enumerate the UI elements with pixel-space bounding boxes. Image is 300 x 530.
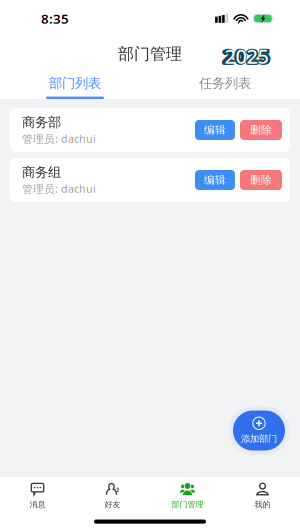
staticText: 我的 [254,500,270,509]
staticText: 删除 [250,123,272,136]
staticText: 商务部 [22,114,61,131]
staticText: 商务组 [22,164,61,181]
staticText: 2025 [222,43,270,70]
staticText: 2025 [223,43,271,70]
button[interactable]: 删除 [240,120,282,140]
button[interactable]: 任务列表 [150,67,300,99]
button[interactable]: 部门列表 [0,67,150,99]
staticText: 2025 [224,43,272,69]
staticText: 添加部门 [241,433,277,445]
staticText: 2025 [223,42,271,68]
staticText: 8:35 [41,10,69,27]
staticText: 消息 [29,500,45,509]
staticText: 管理员: dachui [22,182,96,196]
staticText: 编辑 [204,123,226,136]
staticText: 2025 [224,43,268,69]
button[interactable]: 消息 [0,473,75,519]
staticText: 编辑 [204,173,226,186]
staticText: 部门管理 [171,500,203,509]
button[interactable]: 编辑 [195,120,235,140]
staticText: 2025 [222,42,270,68]
button[interactable]: 删除 [240,170,282,190]
staticText: 任务列表 [199,75,251,92]
staticText: 部门列表 [49,75,101,92]
staticText: 2025 [222,42,270,68]
button[interactable]: 编辑 [195,170,235,190]
staticText: 管理员: dachui [22,132,96,146]
button[interactable]: 我的 [225,473,300,519]
button[interactable]: 添加部门 [228,406,289,455]
staticText: 删除 [250,173,272,186]
button[interactable]: 部门管理 [150,473,225,519]
staticText: 2025 [222,44,270,70]
staticText: 部门管理 [118,44,182,64]
staticText: 好友 [104,500,120,509]
staticText: 2025 [221,43,269,69]
button[interactable]: 好友 [75,473,150,519]
